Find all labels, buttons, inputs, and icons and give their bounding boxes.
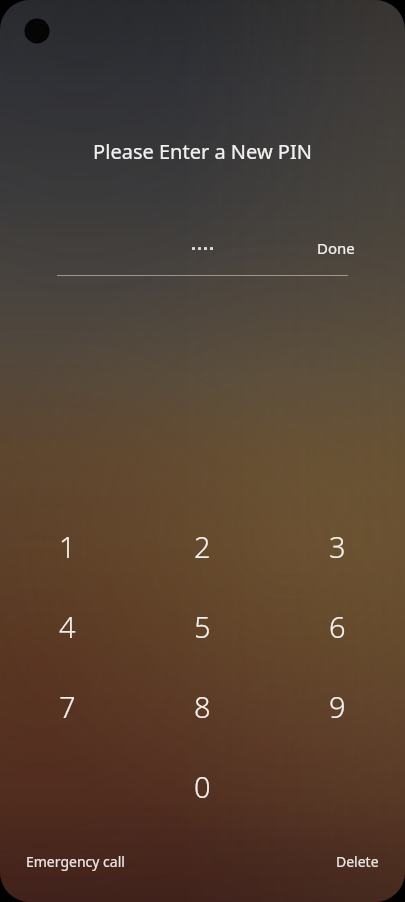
button[interactable]: 6 bbox=[270, 593, 405, 660]
button[interactable]: 4 bbox=[0, 593, 135, 660]
staticText: Done bbox=[317, 238, 355, 258]
button[interactable]: 8 bbox=[135, 673, 270, 740]
button[interactable]: 9 bbox=[270, 673, 405, 740]
button[interactable]: Delete bbox=[324, 844, 391, 879]
button[interactable]: 2 bbox=[135, 513, 270, 580]
button[interactable]: 0 bbox=[135, 753, 270, 820]
button[interactable]: 5 bbox=[135, 593, 270, 660]
staticText: Emergency call bbox=[26, 852, 125, 871]
staticText: 4 bbox=[59, 607, 76, 646]
staticText: 8 bbox=[194, 687, 211, 726]
staticText: 3 bbox=[329, 527, 346, 566]
staticText: 9 bbox=[329, 687, 346, 726]
staticText: Delete bbox=[336, 852, 379, 871]
staticText: 7 bbox=[59, 687, 76, 726]
staticText: 6 bbox=[329, 607, 346, 646]
button[interactable]: 7 bbox=[0, 673, 135, 740]
staticText: Please Enter a New PIN bbox=[0, 138, 405, 165]
button[interactable]: 3 bbox=[270, 513, 405, 580]
staticText: 2 bbox=[194, 527, 211, 566]
button[interactable]: Emergency call bbox=[14, 844, 137, 879]
staticText: 5 bbox=[194, 607, 211, 646]
button[interactable]: 1 bbox=[0, 513, 135, 580]
staticText: 1 bbox=[59, 527, 76, 566]
staticText: 0 bbox=[194, 767, 211, 806]
button[interactable]: Done bbox=[311, 232, 361, 264]
